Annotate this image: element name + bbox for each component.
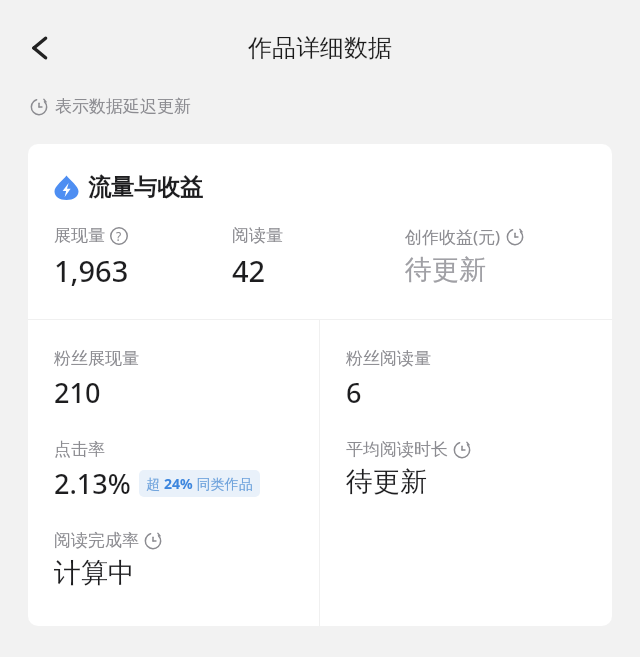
staticText: 阅读完成率 [54,530,139,551]
staticText: 2.13% [54,465,131,502]
staticText: 表示数据延迟更新 [55,96,191,117]
staticText: ? [116,228,122,244]
staticText: 210 [54,374,101,411]
staticText: 待更新 [346,465,427,499]
staticText: 待更新 [405,253,486,287]
staticText: 超 [146,474,164,493]
staticText: 创作收益(元) [405,225,501,248]
button[interactable]: 返回 [12,20,68,76]
staticText: 6 [346,374,362,411]
staticText: 粉丝展现量 [54,348,139,369]
staticText: 作品详细数据 [248,33,392,63]
staticText: 平均阅读时长 [346,439,448,460]
staticText: 计算中 [54,556,135,590]
staticText: 同类作品 [193,474,253,493]
staticText: 流量与收益 [88,173,203,202]
staticText: 阅读量 [232,225,283,246]
staticText: 展现量 [54,225,105,246]
staticText: 24% [164,474,193,493]
staticText: 粉丝阅读量 [346,348,431,369]
staticText: 点击率 [54,439,105,460]
staticText: 42 [232,251,266,290]
staticText: 1,963 [54,251,129,290]
